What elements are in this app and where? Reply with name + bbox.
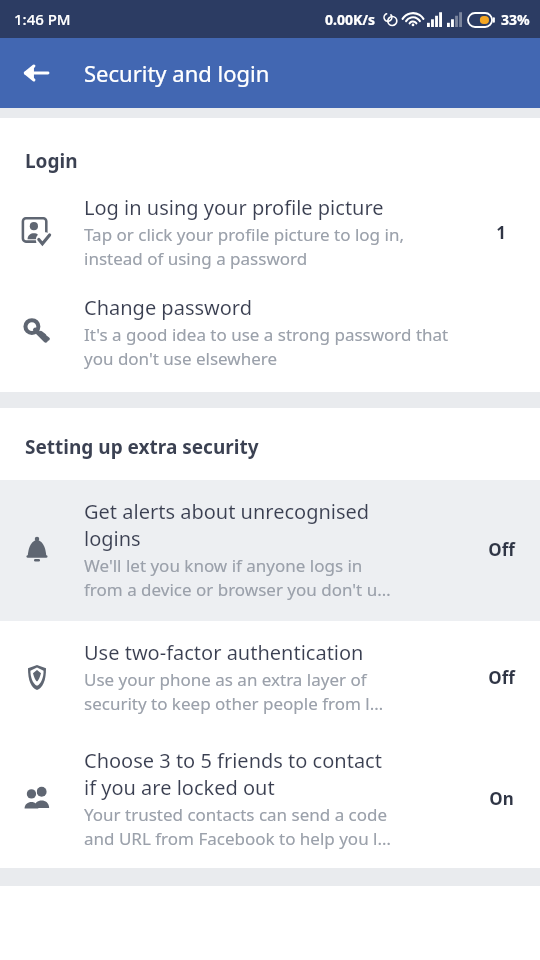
staticText: Your trusted contacts can send a code an…	[84, 803, 391, 850]
button[interactable]: Back	[12, 49, 60, 97]
button[interactable]: Log in using your profile picture	[0, 186, 540, 286]
staticText: Off	[488, 666, 515, 689]
staticText: On	[489, 787, 514, 810]
staticText: Security and login	[84, 58, 270, 88]
staticText: 0.00K/s	[325, 10, 376, 29]
staticText: Choose 3 to 5 friends to contact if you …	[84, 747, 382, 801]
staticText: Tap or click your profile picture to log…	[84, 223, 404, 270]
staticText: 33%	[501, 10, 530, 29]
button[interactable]: Use two-factor authentication	[0, 621, 540, 733]
staticText: Use your phone as an extra layer of secu…	[84, 668, 384, 715]
staticText: Use two-factor authentication	[84, 639, 364, 666]
staticText: 1	[496, 221, 506, 244]
staticText: Change password	[84, 294, 253, 321]
staticText: It's a good idea to use a strong passwor…	[84, 323, 449, 370]
staticText: 1:46 PM	[14, 9, 71, 29]
staticText: Login	[25, 148, 78, 174]
staticText: Log in using your profile picture	[84, 194, 384, 221]
staticText: Get alerts about unrecognised logins	[84, 498, 370, 552]
staticText: We'll let you know if anyone logs in fro…	[84, 554, 391, 601]
button[interactable]: Change password	[0, 286, 540, 392]
staticText: Off	[488, 538, 515, 561]
button[interactable]: Choose 3 to 5 friends to contact if you …	[0, 733, 540, 868]
button[interactable]: Get alerts about unrecognised logins	[0, 480, 540, 621]
staticText: Setting up extra security	[25, 434, 259, 460]
